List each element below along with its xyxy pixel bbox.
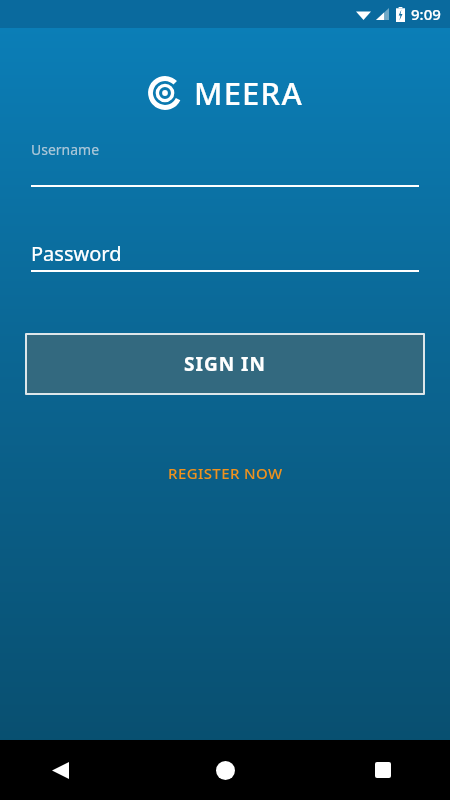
staticText: SIGN IN	[184, 351, 266, 377]
staticText: REGISTER NOW	[168, 463, 283, 483]
staticText: Username	[31, 140, 100, 159]
button[interactable]: Recent apps	[300, 740, 450, 800]
button[interactable]: Back	[0, 740, 150, 800]
staticText: 9:09	[411, 4, 441, 24]
button[interactable]: Username	[0, 140, 450, 187]
button[interactable]: SIGN IN	[25, 333, 425, 395]
button[interactable]: Password	[0, 240, 450, 272]
button[interactable]: REGISTER NOW	[154, 456, 297, 490]
button[interactable]: Home	[150, 740, 300, 800]
staticText: MEERA	[194, 72, 303, 114]
staticText: Password	[31, 240, 122, 267]
